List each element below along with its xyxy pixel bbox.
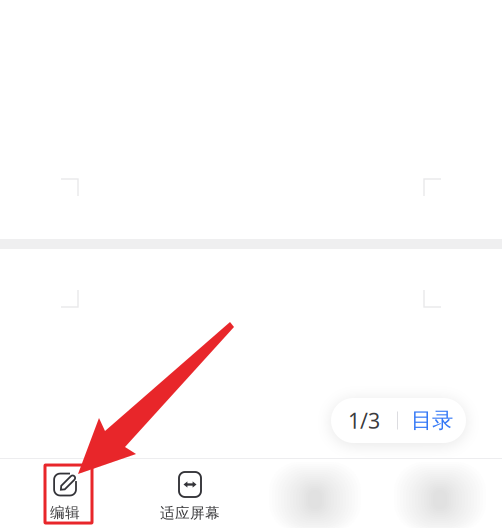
staticText: 1/3	[348, 406, 380, 435]
staticText: 目录	[411, 407, 453, 434]
button[interactable]: 1/3	[331, 398, 466, 443]
button[interactable]: 编辑	[26, 466, 104, 528]
staticText: 适应屏幕	[160, 504, 220, 522]
staticText: 编辑	[50, 503, 80, 521]
button[interactable]: 适应屏幕	[151, 466, 229, 528]
